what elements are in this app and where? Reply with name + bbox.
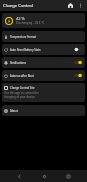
button[interactable]: Toggle off bbox=[74, 46, 82, 53]
button[interactable]: Autorun after Boot bbox=[2, 70, 85, 81]
button[interactable]: Home bbox=[66, 1, 75, 10]
staticText: Charge Control bbox=[3, 3, 33, 9]
staticText: Temperature Format bbox=[10, 35, 37, 39]
button[interactable]: Temperature Format bbox=[2, 31, 85, 42]
button[interactable]: Toggle on bbox=[74, 72, 82, 79]
staticText: Notifications bbox=[10, 61, 26, 65]
button[interactable]: Home bbox=[38, 170, 50, 182]
staticText: About bbox=[10, 109, 18, 113]
button[interactable]: Charge Control Site bbox=[2, 83, 85, 102]
staticText: Auto Reset Battery Stats bbox=[10, 48, 41, 52]
button[interactable]: Auto Reset Battery Stats bbox=[2, 44, 85, 55]
button[interactable]: Back bbox=[13, 170, 25, 182]
button[interactable]: More options bbox=[76, 1, 85, 10]
button[interactable]: Toggle on bbox=[74, 59, 82, 66]
staticText: 42 % bbox=[16, 16, 25, 21]
staticText: Autorun after Boot bbox=[10, 74, 34, 78]
button[interactable]: Recents bbox=[62, 170, 74, 182]
button[interactable]: About bbox=[2, 105, 85, 116]
staticText: Use this app to control the charging of … bbox=[4, 91, 39, 99]
button[interactable]: Notifications bbox=[2, 57, 85, 68]
staticText: Discharging - 28.5 °C bbox=[16, 21, 45, 25]
button[interactable]: 42 % bbox=[2, 13, 85, 28]
staticText: Charge Control Site bbox=[10, 86, 35, 90]
